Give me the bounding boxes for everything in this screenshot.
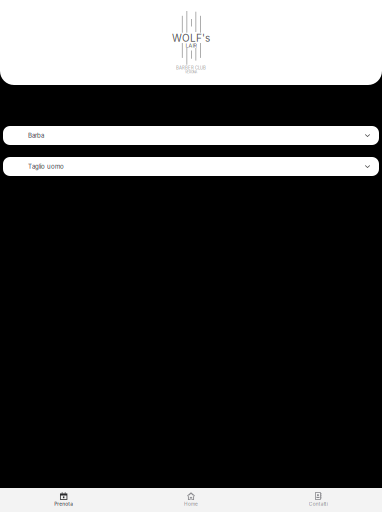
staticText: BARBER CLUB	[176, 65, 206, 71]
button[interactable]: Prenota	[0, 488, 127, 512]
staticText: VERONA	[185, 70, 197, 74]
button[interactable]: Home	[127, 488, 255, 512]
staticText: Barba	[28, 132, 44, 139]
staticText: WOLF's	[172, 32, 210, 44]
button[interactable]: Contatti	[255, 488, 382, 512]
staticText: Home	[184, 501, 198, 507]
button[interactable]: Barba	[3, 126, 379, 145]
staticText: Taglio uomo	[28, 163, 64, 170]
staticText: Prenota	[54, 501, 73, 507]
button[interactable]: Taglio uomo	[3, 157, 379, 176]
staticText: Contatti	[309, 501, 328, 507]
staticText: LAIR	[185, 42, 196, 49]
